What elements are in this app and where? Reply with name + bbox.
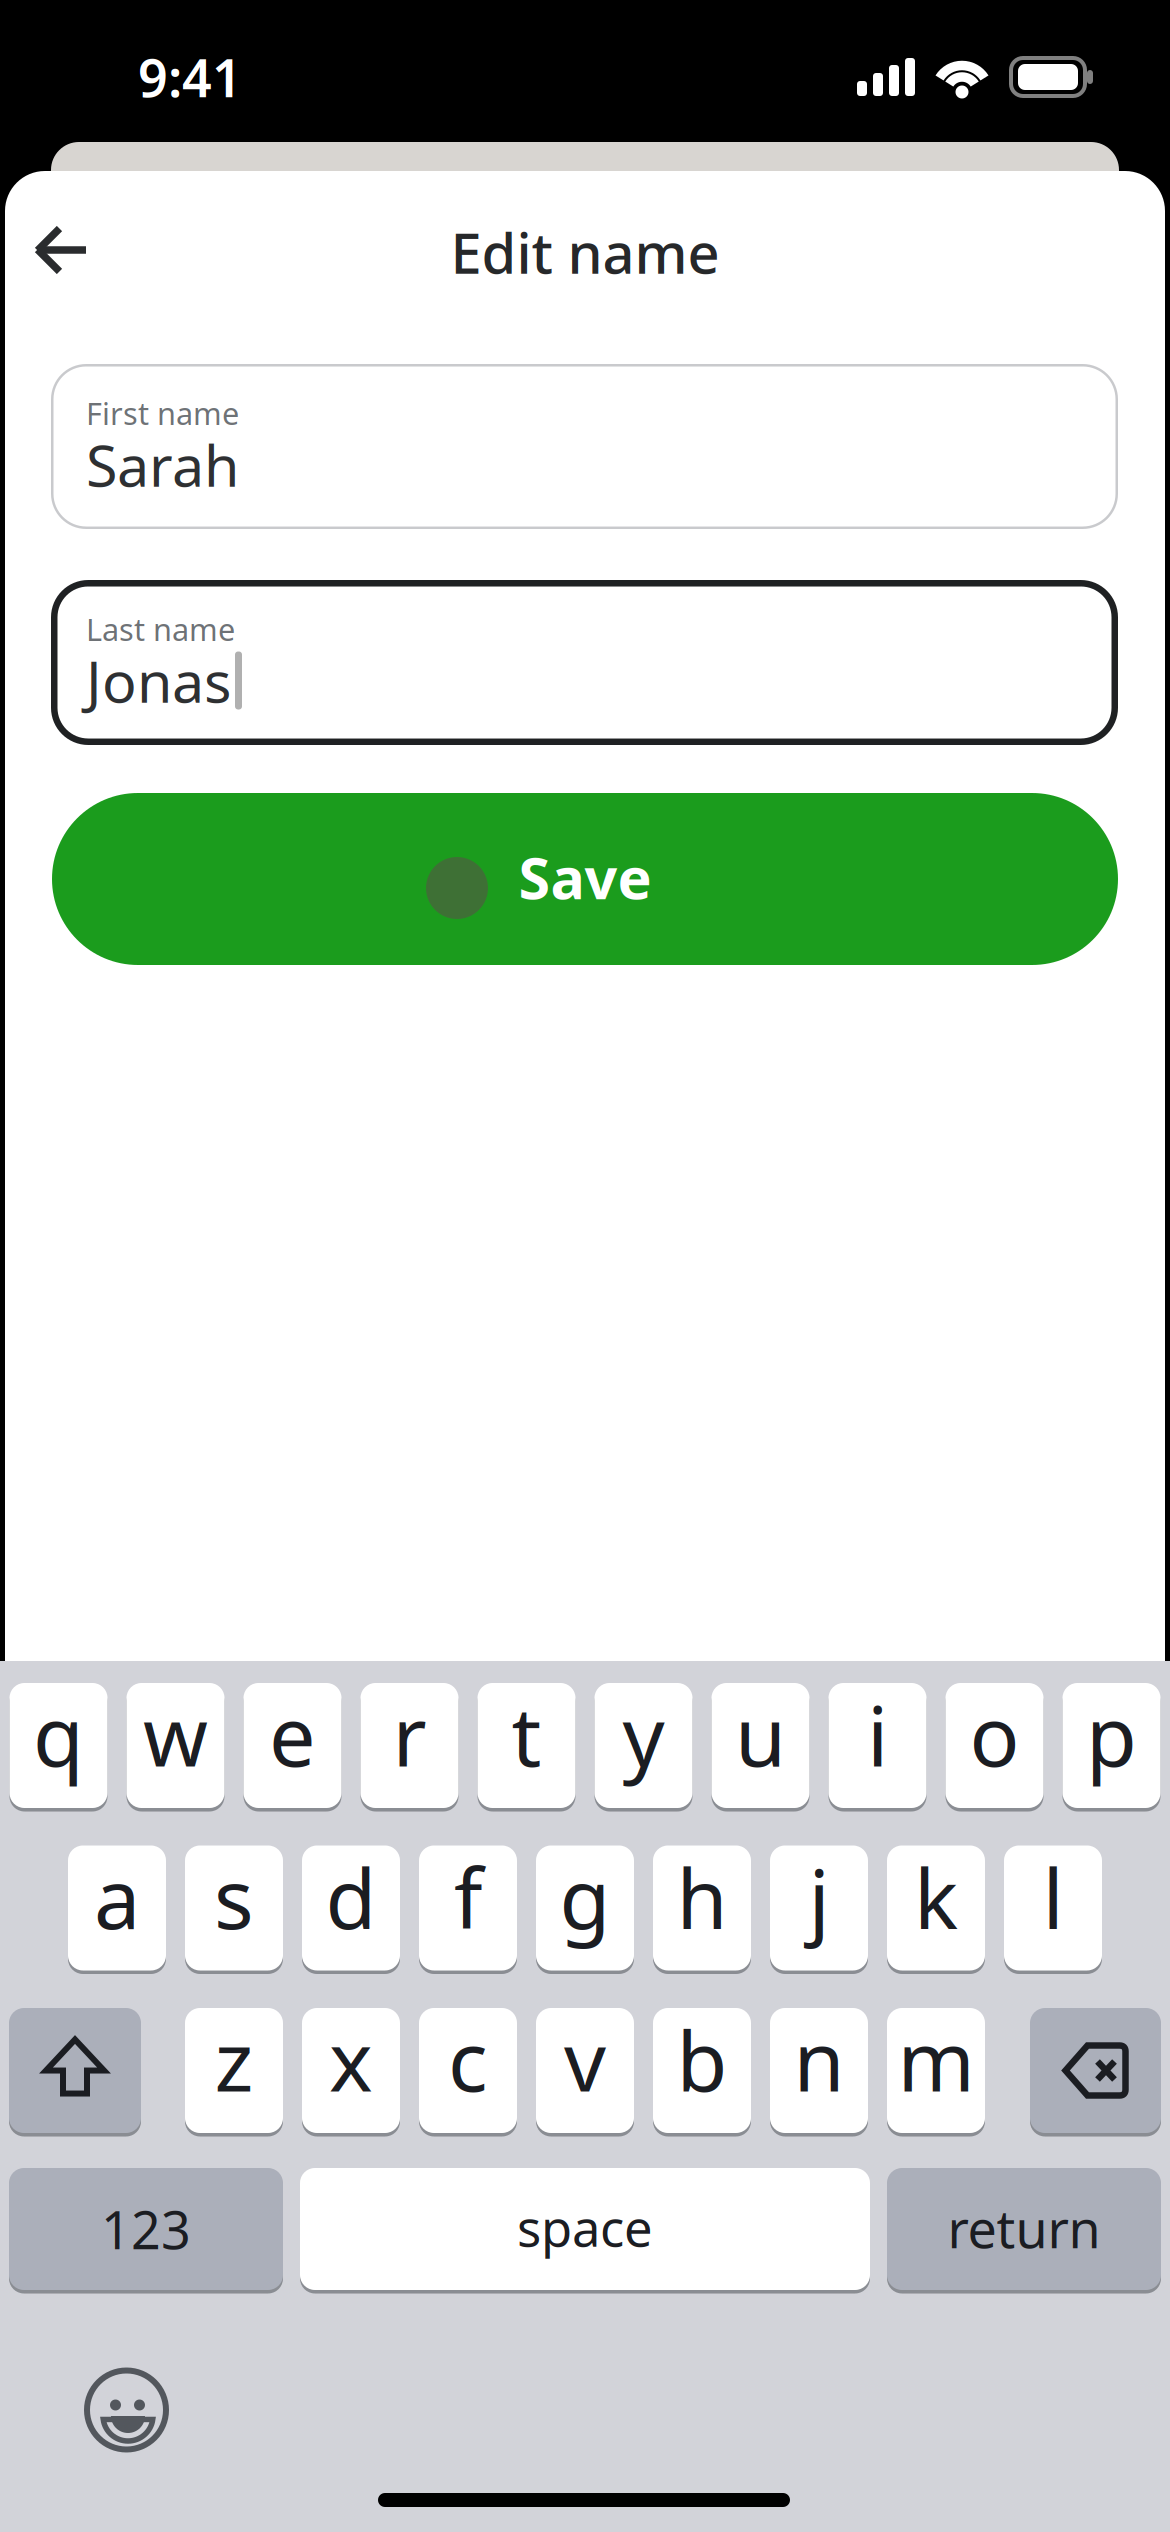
staticText: r [392, 1680, 426, 1789]
button[interactable]: s [185, 1843, 283, 1972]
staticText: f [454, 1842, 482, 1952]
button[interactable]: q [9, 1681, 107, 1810]
button[interactable]: y [594, 1681, 692, 1810]
staticText: i [867, 1680, 888, 1789]
staticText: space [517, 2193, 653, 2261]
staticText: Sarah [86, 426, 239, 502]
staticText: 123 [101, 2194, 191, 2264]
button[interactable]: Last name [51, 580, 1118, 745]
button[interactable]: Shift [9, 2006, 141, 2135]
button[interactable]: r [360, 1681, 458, 1810]
staticText: l [1042, 1842, 1063, 1952]
button[interactable]: h [653, 1843, 751, 1972]
staticText: m [897, 2005, 974, 2114]
button[interactable]: p [1062, 1681, 1160, 1810]
staticText: s [214, 1842, 254, 1952]
staticText: p [1086, 1680, 1137, 1789]
button[interactable]: x [302, 2006, 400, 2135]
button[interactable]: a [68, 1843, 166, 1972]
button[interactable]: z [185, 2006, 283, 2135]
button[interactable]: o [945, 1681, 1043, 1810]
button[interactable]: e [243, 1681, 341, 1810]
button[interactable]: Emoji [83, 2366, 167, 2450]
button[interactable]: g [536, 1843, 634, 1972]
staticText: Save [518, 839, 651, 915]
staticText: o [969, 1680, 1019, 1789]
button[interactable]: t [477, 1681, 575, 1810]
staticText: return [947, 2193, 1100, 2263]
button[interactable]: return [887, 2166, 1161, 2292]
staticText: t [511, 1680, 541, 1789]
staticText: u [735, 1680, 786, 1789]
staticText: g [559, 1842, 610, 1952]
staticText: h [676, 1842, 727, 1952]
staticText: e [269, 1680, 316, 1789]
staticText: z [214, 2005, 253, 2114]
staticText: k [914, 1842, 958, 1952]
staticText: q [33, 1680, 84, 1789]
button[interactable]: space [300, 2166, 870, 2292]
staticText: Last name [86, 609, 235, 649]
button[interactable]: d [302, 1843, 400, 1972]
staticText: d [325, 1842, 376, 1952]
button[interactable]: v [536, 2006, 634, 2135]
button[interactable]: m [887, 2006, 985, 2135]
staticText: Jonas [86, 642, 231, 718]
staticText: x [329, 2005, 373, 2114]
button[interactable]: l [1004, 1843, 1102, 1972]
button[interactable]: u [711, 1681, 809, 1810]
button[interactable]: n [770, 2006, 868, 2135]
staticText: j [808, 1842, 829, 1952]
staticText: y [622, 1680, 664, 1789]
staticText: c [448, 2005, 488, 2114]
staticText: 9:41 [138, 42, 242, 112]
staticText: First name [86, 393, 239, 433]
button[interactable]: Save [52, 793, 1118, 965]
button[interactable]: f [419, 1843, 517, 1972]
staticText: a [94, 1842, 140, 1952]
button[interactable]: 123 [9, 2166, 283, 2292]
button[interactable]: w [126, 1681, 224, 1810]
button[interactable]: First name [51, 364, 1118, 529]
button[interactable]: Back [11, 205, 111, 295]
staticText: b [676, 2005, 727, 2114]
button[interactable]: k [887, 1843, 985, 1972]
button[interactable]: c [419, 2006, 517, 2135]
staticText: n [793, 2005, 844, 2114]
staticText: v [564, 2005, 606, 2114]
button[interactable]: j [770, 1843, 868, 1972]
button[interactable]: Delete [1030, 2006, 1161, 2135]
button[interactable]: b [653, 2006, 751, 2135]
staticText: w [143, 1680, 208, 1789]
staticText: Edit name [450, 215, 719, 289]
button[interactable]: i [828, 1681, 926, 1810]
